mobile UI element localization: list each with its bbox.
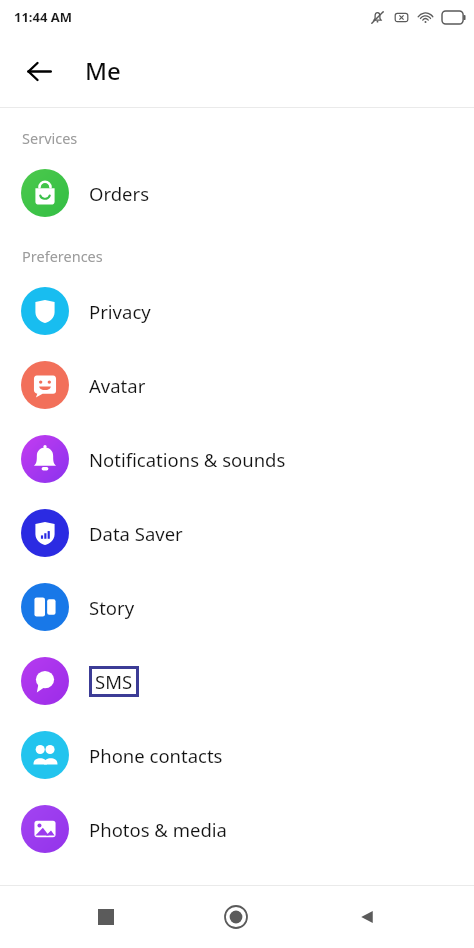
button[interactable]: Avatar — [0, 348, 474, 422]
button[interactable]: Story — [0, 570, 474, 644]
button[interactable]: Recent apps — [82, 893, 130, 941]
staticText: Orders — [89, 181, 150, 206]
button[interactable]: Back — [16, 48, 62, 94]
staticText: Data Saver — [89, 521, 183, 546]
staticText: Me — [85, 54, 121, 87]
button[interactable]: Privacy — [0, 274, 474, 348]
staticText: Photos & media — [89, 817, 227, 842]
button[interactable]: Home — [212, 893, 260, 941]
staticText: Phone contacts — [89, 743, 223, 768]
button[interactable]: Back — [343, 893, 391, 941]
button[interactable]: Notifications & sounds — [0, 422, 474, 496]
button[interactable]: Phone contacts — [0, 718, 474, 792]
staticText: Privacy — [89, 299, 151, 324]
staticText: Story — [89, 595, 135, 620]
button[interactable]: SMS — [0, 644, 474, 718]
staticText: SMS — [95, 669, 133, 694]
staticText: Avatar — [89, 373, 146, 398]
button[interactable]: Photos & media — [0, 792, 474, 866]
staticText: 11:44 AM — [14, 8, 73, 26]
button[interactable]: Orders — [0, 156, 474, 230]
staticText: Notifications & sounds — [89, 447, 286, 472]
staticText: Preferences — [22, 246, 103, 266]
staticText: Services — [22, 128, 78, 148]
button[interactable]: Data Saver — [0, 496, 474, 570]
